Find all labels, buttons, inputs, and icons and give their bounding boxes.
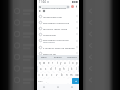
staticText: wbsh bs vel [43,52,57,55]
button[interactable]: i [67,60,71,66]
staticText: 11:04 [39,0,46,4]
staticText: , [46,80,47,83]
staticText: organizator [43,33,57,36]
button[interactable]: m [69,72,74,78]
staticText: worldadam motorcircle download [43,21,75,24]
button[interactable]: ?123 [37,78,44,84]
button[interactable]: j [66,66,70,72]
button[interactable]: google.com/search?q [38,5,70,9]
button[interactable]: y [59,60,63,66]
staticText: wbsh [41,56,47,59]
staticText: n [66,73,68,77]
button[interactable]: s [43,66,48,72]
staticText: terminus repair raffle [43,27,67,30]
staticText: z [42,73,44,77]
button[interactable]: Back [39,10,41,12]
staticText: o [72,61,74,65]
button[interactable]: r [51,60,55,66]
button[interactable]: Navigation [37,84,51,90]
button[interactable]: More options [75,5,78,8]
button[interactable]: b [59,72,64,78]
button[interactable]: English [51,55,65,60]
button[interactable]: wbsh bs vel [37,50,79,56]
staticText: google.com/search?q [42,6,67,9]
staticText: a [40,67,42,71]
button[interactable]: Navigation [51,84,65,90]
staticText: → [75,80,77,82]
button[interactable]: it made at gone up windows [37,44,79,50]
button[interactable]: wbsh [37,55,51,60]
staticText: g [59,67,61,71]
staticText: f [55,67,56,71]
staticText: ⇧ [38,74,41,77]
staticText: t [57,61,58,65]
button[interactable]: z [41,72,45,78]
button[interactable]: v [54,72,59,78]
staticText: x [46,73,48,77]
button[interactable]: numbers [65,55,79,60]
staticText: v [56,73,58,77]
button[interactable]: p [75,60,79,66]
staticText: e [48,61,50,65]
button[interactable]: a [38,66,43,72]
staticText: c [51,73,53,77]
staticText: q [39,61,41,65]
staticText: k [71,67,73,71]
staticText: p [76,61,78,65]
button[interactable]: n [64,72,69,78]
staticText: clips.com/b [43,41,55,44]
button[interactable]: u [63,60,67,66]
staticText: ⌫ [75,74,79,77]
button[interactable]: c [49,72,54,78]
staticText: l [76,67,77,71]
button[interactable]: Navigation [65,84,79,90]
staticText: j [68,67,69,71]
staticText: u [64,61,66,65]
button[interactable]: organizator [37,31,79,37]
staticText: it made at gone up windows [43,46,75,49]
button[interactable]: terminus repair raffle [37,25,79,31]
staticText: ?123 [38,80,43,83]
staticText: worldadam forerunner android [43,38,75,41]
button[interactable]: g [58,66,62,72]
staticText: s [45,67,47,71]
staticText: numbers [67,56,77,59]
button[interactable]: t [55,60,59,66]
button[interactable]: myautosave.com [37,13,79,19]
button[interactable]: l [74,66,78,72]
button[interactable]: f [53,66,58,72]
button[interactable]: Account [71,5,74,8]
staticText: r [52,61,54,65]
button[interactable]: worldadam forerunner android [37,37,79,44]
button[interactable]: worldadam motorcircle download [37,19,79,25]
button[interactable]: h [62,66,66,72]
staticText: d [50,67,52,71]
staticText: h [63,67,65,71]
button[interactable]: x [45,72,49,78]
staticText: myautosave.com [43,15,63,18]
staticText: b [61,73,63,77]
staticText: English [54,56,62,59]
button[interactable]: w [42,60,47,66]
button[interactable]: ⌫ [74,72,79,78]
button[interactable]: d [48,66,53,72]
button[interactable]: e [47,60,51,66]
button[interactable]: ⇧ [37,72,41,78]
staticText: y [60,61,62,65]
button[interactable]: o [71,60,75,66]
button[interactable]: k [70,66,74,72]
button[interactable]: q [37,60,42,66]
button[interactable]: Go [72,78,79,84]
